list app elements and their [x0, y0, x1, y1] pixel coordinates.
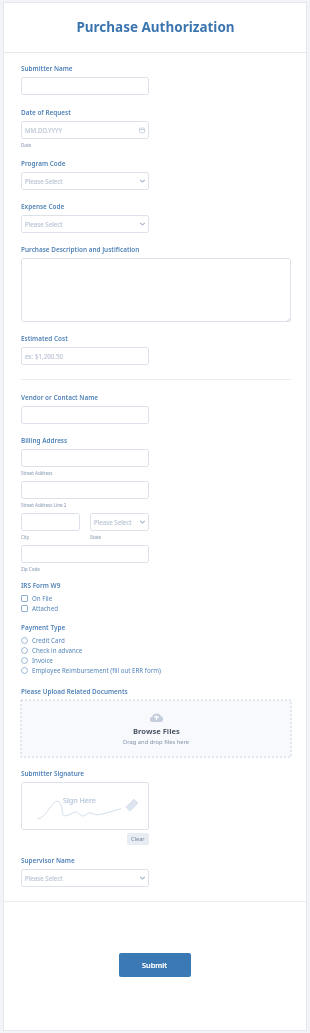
staticText: IRS Form W9 [21, 581, 61, 590]
button[interactable] [21, 406, 149, 424]
button[interactable]: MM.DD.YYYY [21, 121, 149, 139]
button[interactable] [21, 258, 291, 322]
button[interactable]: Check in advance [21, 645, 171, 655]
staticText: Attached [32, 604, 58, 612]
button[interactable]: ex: $1,200.50 [21, 347, 149, 365]
staticText: State [90, 534, 102, 540]
staticText: Credit Card [32, 636, 65, 644]
staticText: Payment Type [21, 623, 66, 632]
staticText: Please Select [25, 220, 140, 228]
staticText: City [21, 534, 30, 540]
staticText: Please Select [25, 874, 140, 882]
staticText: Drag and drop files here [123, 738, 190, 746]
staticText: Billing Address [21, 436, 68, 445]
staticText: Zip Code [21, 566, 40, 572]
staticText: ex: $1,200.50 [25, 352, 145, 360]
staticText: Please Select [94, 518, 140, 526]
button[interactable] [21, 481, 149, 499]
button[interactable]: Submit [119, 953, 191, 977]
button[interactable]: Employee Reimbursement (fill out ERR for… [21, 665, 171, 675]
button[interactable]: Browse Files [21, 700, 291, 757]
button[interactable]: Attached [21, 603, 291, 613]
staticText: Submitter Name [21, 64, 73, 73]
staticText: Employee Reimbursement (fill out ERR for… [32, 666, 161, 674]
staticText: Please Upload Related Documents [21, 687, 128, 696]
button[interactable]: Please Select [90, 513, 149, 531]
staticText: Program Code [21, 159, 66, 168]
staticText: Purchase Authorization [76, 18, 235, 36]
staticText: Estimated Cost [21, 334, 68, 343]
button[interactable]: Please Select [21, 215, 149, 233]
staticText: Date of Request [21, 108, 71, 117]
staticText: Purchase Description and Justification [21, 245, 140, 254]
staticText: Browse Files [133, 726, 180, 736]
staticText: Street Address Line 2 [21, 502, 67, 508]
button[interactable]: Clear [127, 833, 149, 845]
button[interactable]: Invoice [21, 655, 171, 665]
button[interactable]: On File [21, 593, 291, 603]
button[interactable]: Please Select [21, 869, 149, 887]
staticText: Date [21, 142, 32, 148]
staticText: Vendor or Contact Name [21, 393, 99, 402]
staticText: Clear [131, 835, 145, 843]
staticText: Submitter Signature [21, 769, 85, 778]
staticText: On File [32, 594, 53, 602]
staticText: Invoice [32, 656, 53, 664]
staticText: Check in advance [32, 646, 83, 654]
staticText: Submit [142, 960, 168, 970]
staticText: Please Select [25, 177, 140, 185]
button[interactable] [21, 77, 149, 95]
staticText: Supervisor Name [21, 856, 75, 865]
staticText: MM.DD.YYYY [25, 126, 139, 134]
button[interactable] [21, 545, 149, 563]
button[interactable]: Please Select [21, 172, 149, 190]
button[interactable]: Sign Here [21, 782, 149, 830]
button[interactable] [21, 449, 149, 467]
button[interactable] [21, 513, 80, 531]
button[interactable]: Credit Card [21, 635, 171, 645]
staticText: Expense Code [21, 202, 65, 211]
staticText: Street Address [21, 470, 53, 476]
staticText: Sign Here [63, 795, 96, 805]
